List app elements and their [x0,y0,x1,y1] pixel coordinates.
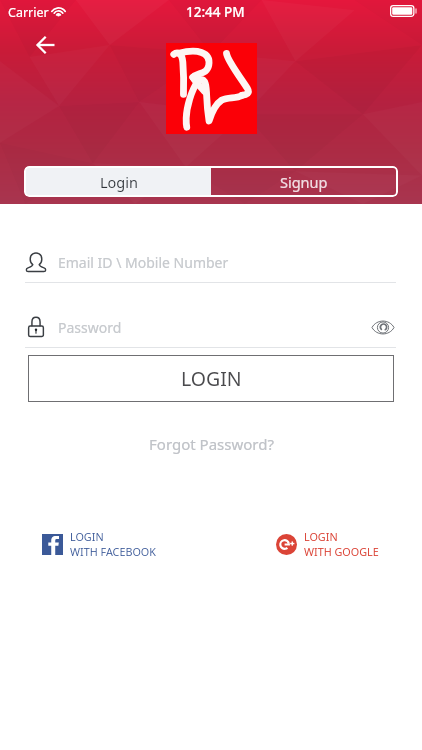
staticText: LOGIN [304,529,338,544]
button[interactable]: LOGIN [42,529,156,559]
button[interactable]: Login [26,168,211,195]
staticText: Password [58,318,122,337]
staticText: WITH FACEBOOK [70,544,156,559]
button[interactable]: Show password [370,314,396,340]
button[interactable]: Email ID \ Mobile Number [25,246,396,278]
staticText: Carrier [8,4,49,21]
staticText: Email ID \ Mobile Number [58,253,229,272]
button[interactable]: Signup [211,168,396,195]
button[interactable]: LOGIN [28,355,394,402]
staticText: Login [100,172,138,192]
staticText: Forgot Password? [149,434,274,454]
button[interactable]: LOGIN [276,529,379,559]
staticText: Signup [280,172,328,192]
staticText: LOGIN [181,365,242,392]
staticText: 12:44 PM [186,3,245,21]
staticText: LOGIN [70,529,104,544]
button[interactable]: Back [26,26,64,64]
staticText: WITH GOOGLE [304,544,379,559]
button[interactable]: Forgot Password? [0,432,422,456]
button[interactable]: Password [25,311,396,343]
